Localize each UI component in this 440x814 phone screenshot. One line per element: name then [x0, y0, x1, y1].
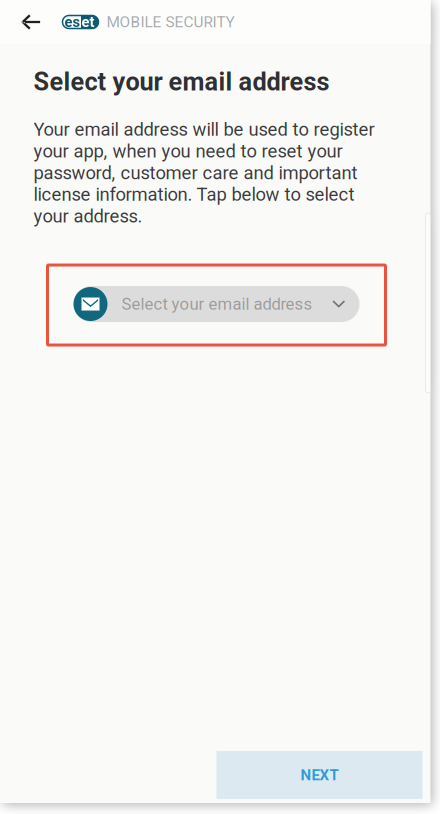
- staticText: es: [64, 13, 80, 31]
- staticText: et: [81, 13, 94, 31]
- button[interactable]: Back: [0, 0, 40, 44]
- button[interactable]: Select your email address: [47, 265, 385, 345]
- staticText: Select your email address: [33, 67, 329, 97]
- staticText: MOBILE SECURITY: [106, 13, 234, 31]
- staticText: Your email address will be used to regis…: [33, 119, 374, 227]
- staticText: Select your email address: [121, 294, 312, 314]
- staticText: NEXT: [300, 766, 338, 784]
- button[interactable]: NEXT: [216, 751, 422, 799]
